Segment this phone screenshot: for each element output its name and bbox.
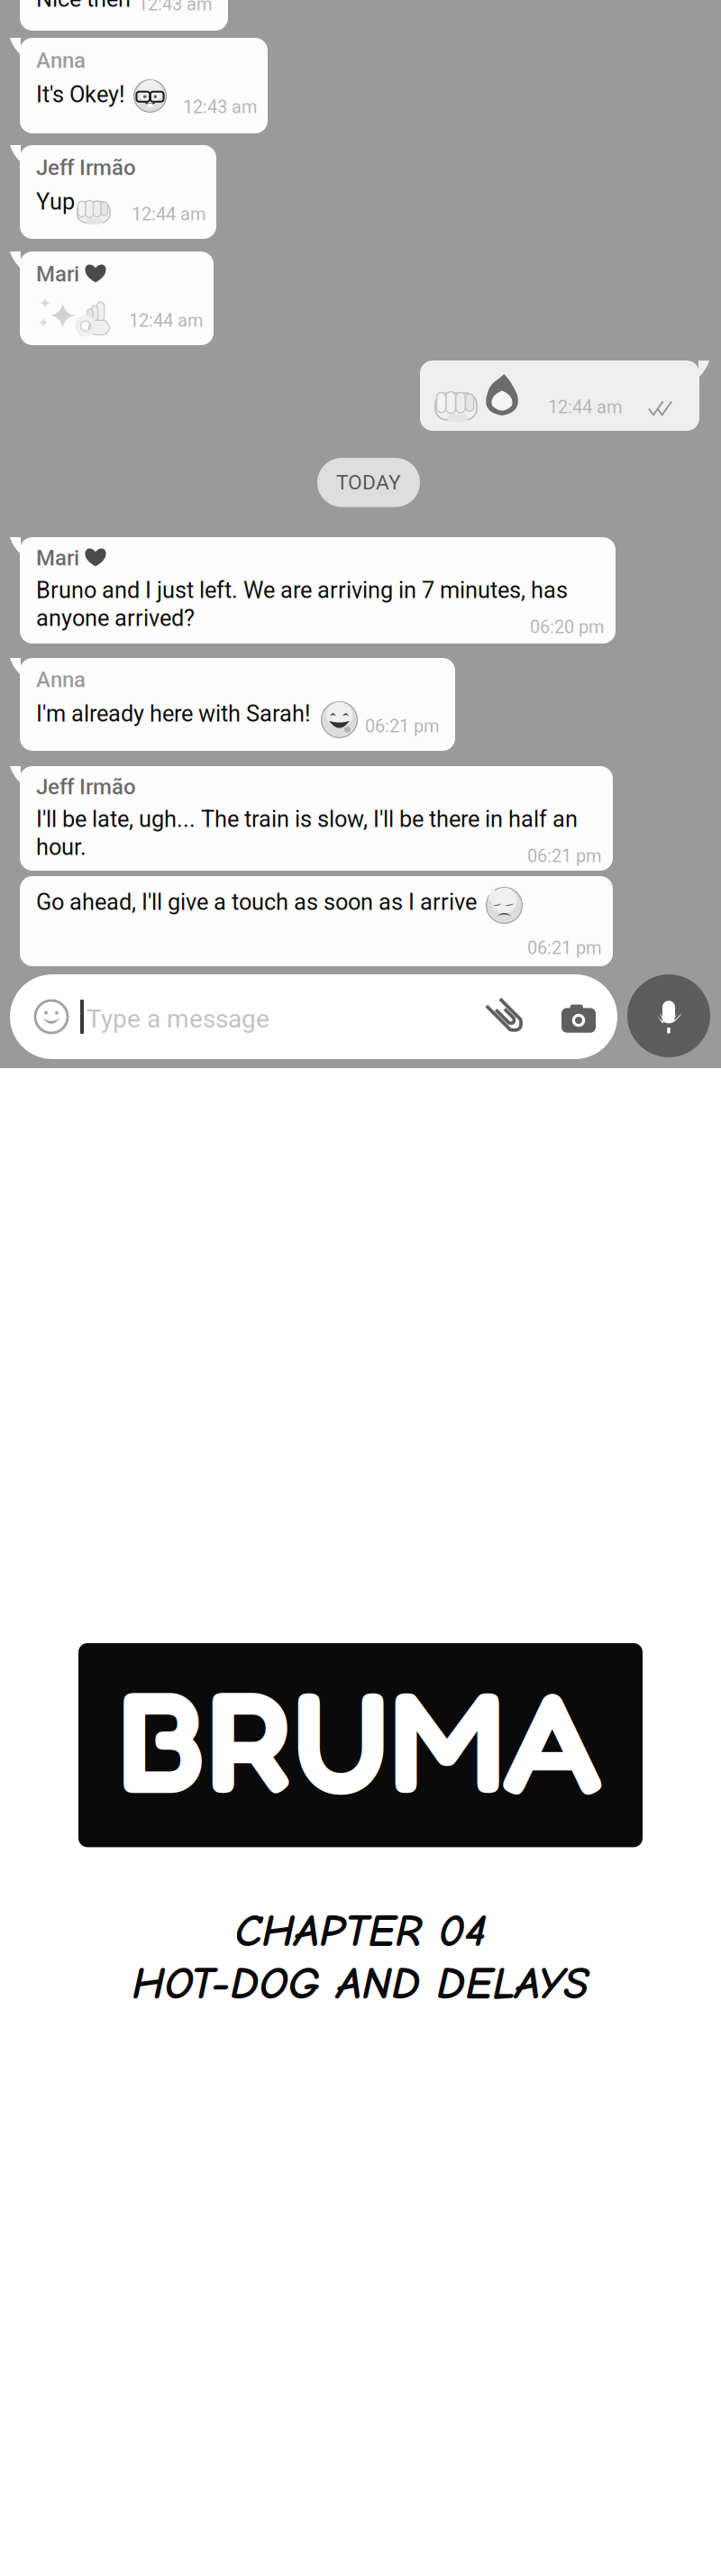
staticText: Jeff Irmão xyxy=(36,774,136,800)
button[interactable]: Jeff Irmão xyxy=(20,766,613,871)
button[interactable]: Anna xyxy=(20,658,455,751)
staticText: Bruno and I just left. We are arriving i… xyxy=(36,577,568,604)
staticText: Type a message xyxy=(87,1004,269,1034)
staticText: BRUMA xyxy=(118,1654,603,1826)
staticText: Nice then xyxy=(36,0,131,12)
button[interactable]: Jeff Irmão xyxy=(20,145,216,239)
button[interactable]: Mari xyxy=(20,537,616,644)
staticText: Jeff Irmão xyxy=(36,155,136,180)
button[interactable]: Record voice message xyxy=(627,974,710,1057)
staticText: 06:21 pm xyxy=(527,845,602,867)
staticText: 12:43 am xyxy=(183,96,258,118)
staticText: 06:21 pm xyxy=(365,716,440,737)
staticText: Anna xyxy=(36,667,86,692)
staticText: Mari xyxy=(36,545,79,571)
staticText: 12:44 am xyxy=(132,204,206,225)
staticText: hour. xyxy=(36,834,87,860)
staticText: I'm already here with Sarah! xyxy=(36,700,311,727)
staticText: HOT-DOG AND DELAYS xyxy=(132,1957,589,2010)
staticText: 12:43 am xyxy=(138,0,213,15)
staticText: anyone arrived? xyxy=(36,605,195,632)
staticText: CHAPTER 04 xyxy=(235,1905,486,1957)
button[interactable]: Nice then xyxy=(20,0,228,31)
staticText: It's Okey! xyxy=(36,81,125,108)
staticText: Mari xyxy=(36,261,79,287)
button[interactable]: Go ahead, I'll give a touch as soon as I… xyxy=(20,876,613,966)
staticText: Anna xyxy=(36,48,86,73)
staticText: Go ahead, I'll give a touch as soon as I… xyxy=(36,889,477,915)
staticText: I'll be late, ugh... The train is slow, … xyxy=(36,806,578,833)
staticText: Yup xyxy=(36,188,75,215)
staticText: TODAY xyxy=(336,470,401,494)
button[interactable]: Anna xyxy=(20,38,268,133)
staticText: 06:21 pm xyxy=(527,937,602,958)
staticText: 12:44 am xyxy=(129,310,204,331)
button[interactable]: 12:44 am xyxy=(420,361,699,431)
staticText: 12:44 am xyxy=(548,397,623,418)
staticText: 06:20 pm xyxy=(530,617,605,638)
button[interactable]: Mari xyxy=(20,251,214,345)
